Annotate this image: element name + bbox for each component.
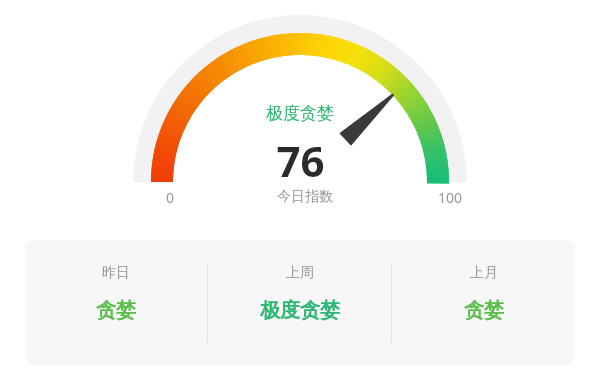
staticText: 上月 [470,264,498,282]
staticText: 100 [438,188,463,207]
staticText: 贪婪 [96,298,136,323]
button[interactable]: 上周 [208,240,391,365]
button[interactable]: 上月 [392,240,575,365]
staticText: 贪婪 [464,298,504,323]
staticText: 0 [166,188,175,207]
staticText: 今日指数 [277,188,333,206]
staticText: 昨日 [102,264,130,282]
staticText: 上周 [286,264,314,282]
staticText: 极度贪婪 [266,103,334,124]
staticText: 76 [276,132,325,189]
button[interactable]: 昨日 [25,240,207,365]
staticText: 极度贪婪 [260,298,340,323]
